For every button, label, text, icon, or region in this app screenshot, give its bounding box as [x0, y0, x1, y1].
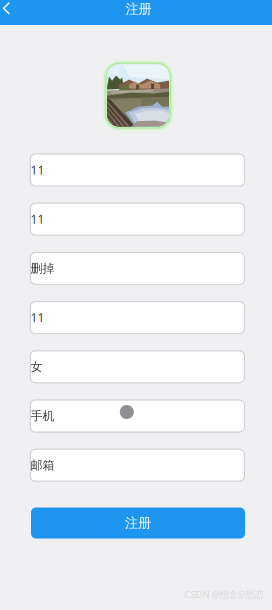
- staticText: 女: [31, 359, 43, 374]
- button[interactable]: Back: [0, 0, 18, 21]
- button[interactable]: 注册: [31, 507, 245, 538]
- staticText: 11: [31, 211, 45, 227]
- button[interactable]: 11: [30, 203, 244, 235]
- staticText: 11: [31, 310, 45, 325]
- staticText: 注册: [125, 1, 151, 17]
- button[interactable]: 删掉: [30, 252, 244, 284]
- staticText: 删掉: [31, 261, 55, 276]
- staticText: 11: [31, 162, 45, 178]
- staticText: 邮箱: [31, 458, 55, 472]
- staticText: CSDN @想念@思恋: [184, 588, 263, 601]
- button[interactable]: Choose avatar: [101, 59, 175, 133]
- staticText: 注册: [125, 515, 151, 531]
- button[interactable]: 11: [30, 154, 244, 186]
- button[interactable]: 女: [30, 351, 244, 383]
- button[interactable]: 邮箱: [30, 449, 244, 481]
- staticText: 手机: [31, 409, 55, 423]
- button[interactable]: 手机: [30, 400, 244, 432]
- button[interactable]: 11: [30, 302, 244, 334]
